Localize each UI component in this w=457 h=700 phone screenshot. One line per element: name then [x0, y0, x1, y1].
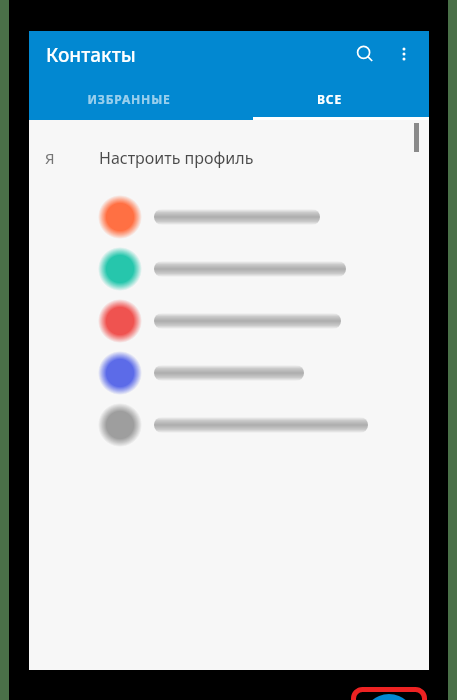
button[interactable]: Поиск: [347, 36, 383, 72]
staticText: ИЗБРАННЫЕ: [87, 91, 171, 107]
button[interactable]: ВСЕ: [229, 77, 429, 120]
button[interactable]: [29, 347, 429, 399]
button[interactable]: Ещё: [386, 36, 422, 72]
button[interactable]: Добавить контакт: [363, 694, 415, 700]
staticText: Контакты: [46, 42, 136, 68]
button[interactable]: Я: [29, 130, 429, 186]
button[interactable]: [29, 399, 429, 451]
staticText: Я: [45, 148, 55, 168]
button[interactable]: [29, 243, 429, 295]
button[interactable]: [29, 191, 429, 243]
staticText: ВСЕ: [317, 91, 342, 107]
staticText: Настроить профиль: [99, 147, 254, 169]
button[interactable]: [29, 295, 429, 347]
button[interactable]: ИЗБРАННЫЕ: [29, 77, 229, 120]
